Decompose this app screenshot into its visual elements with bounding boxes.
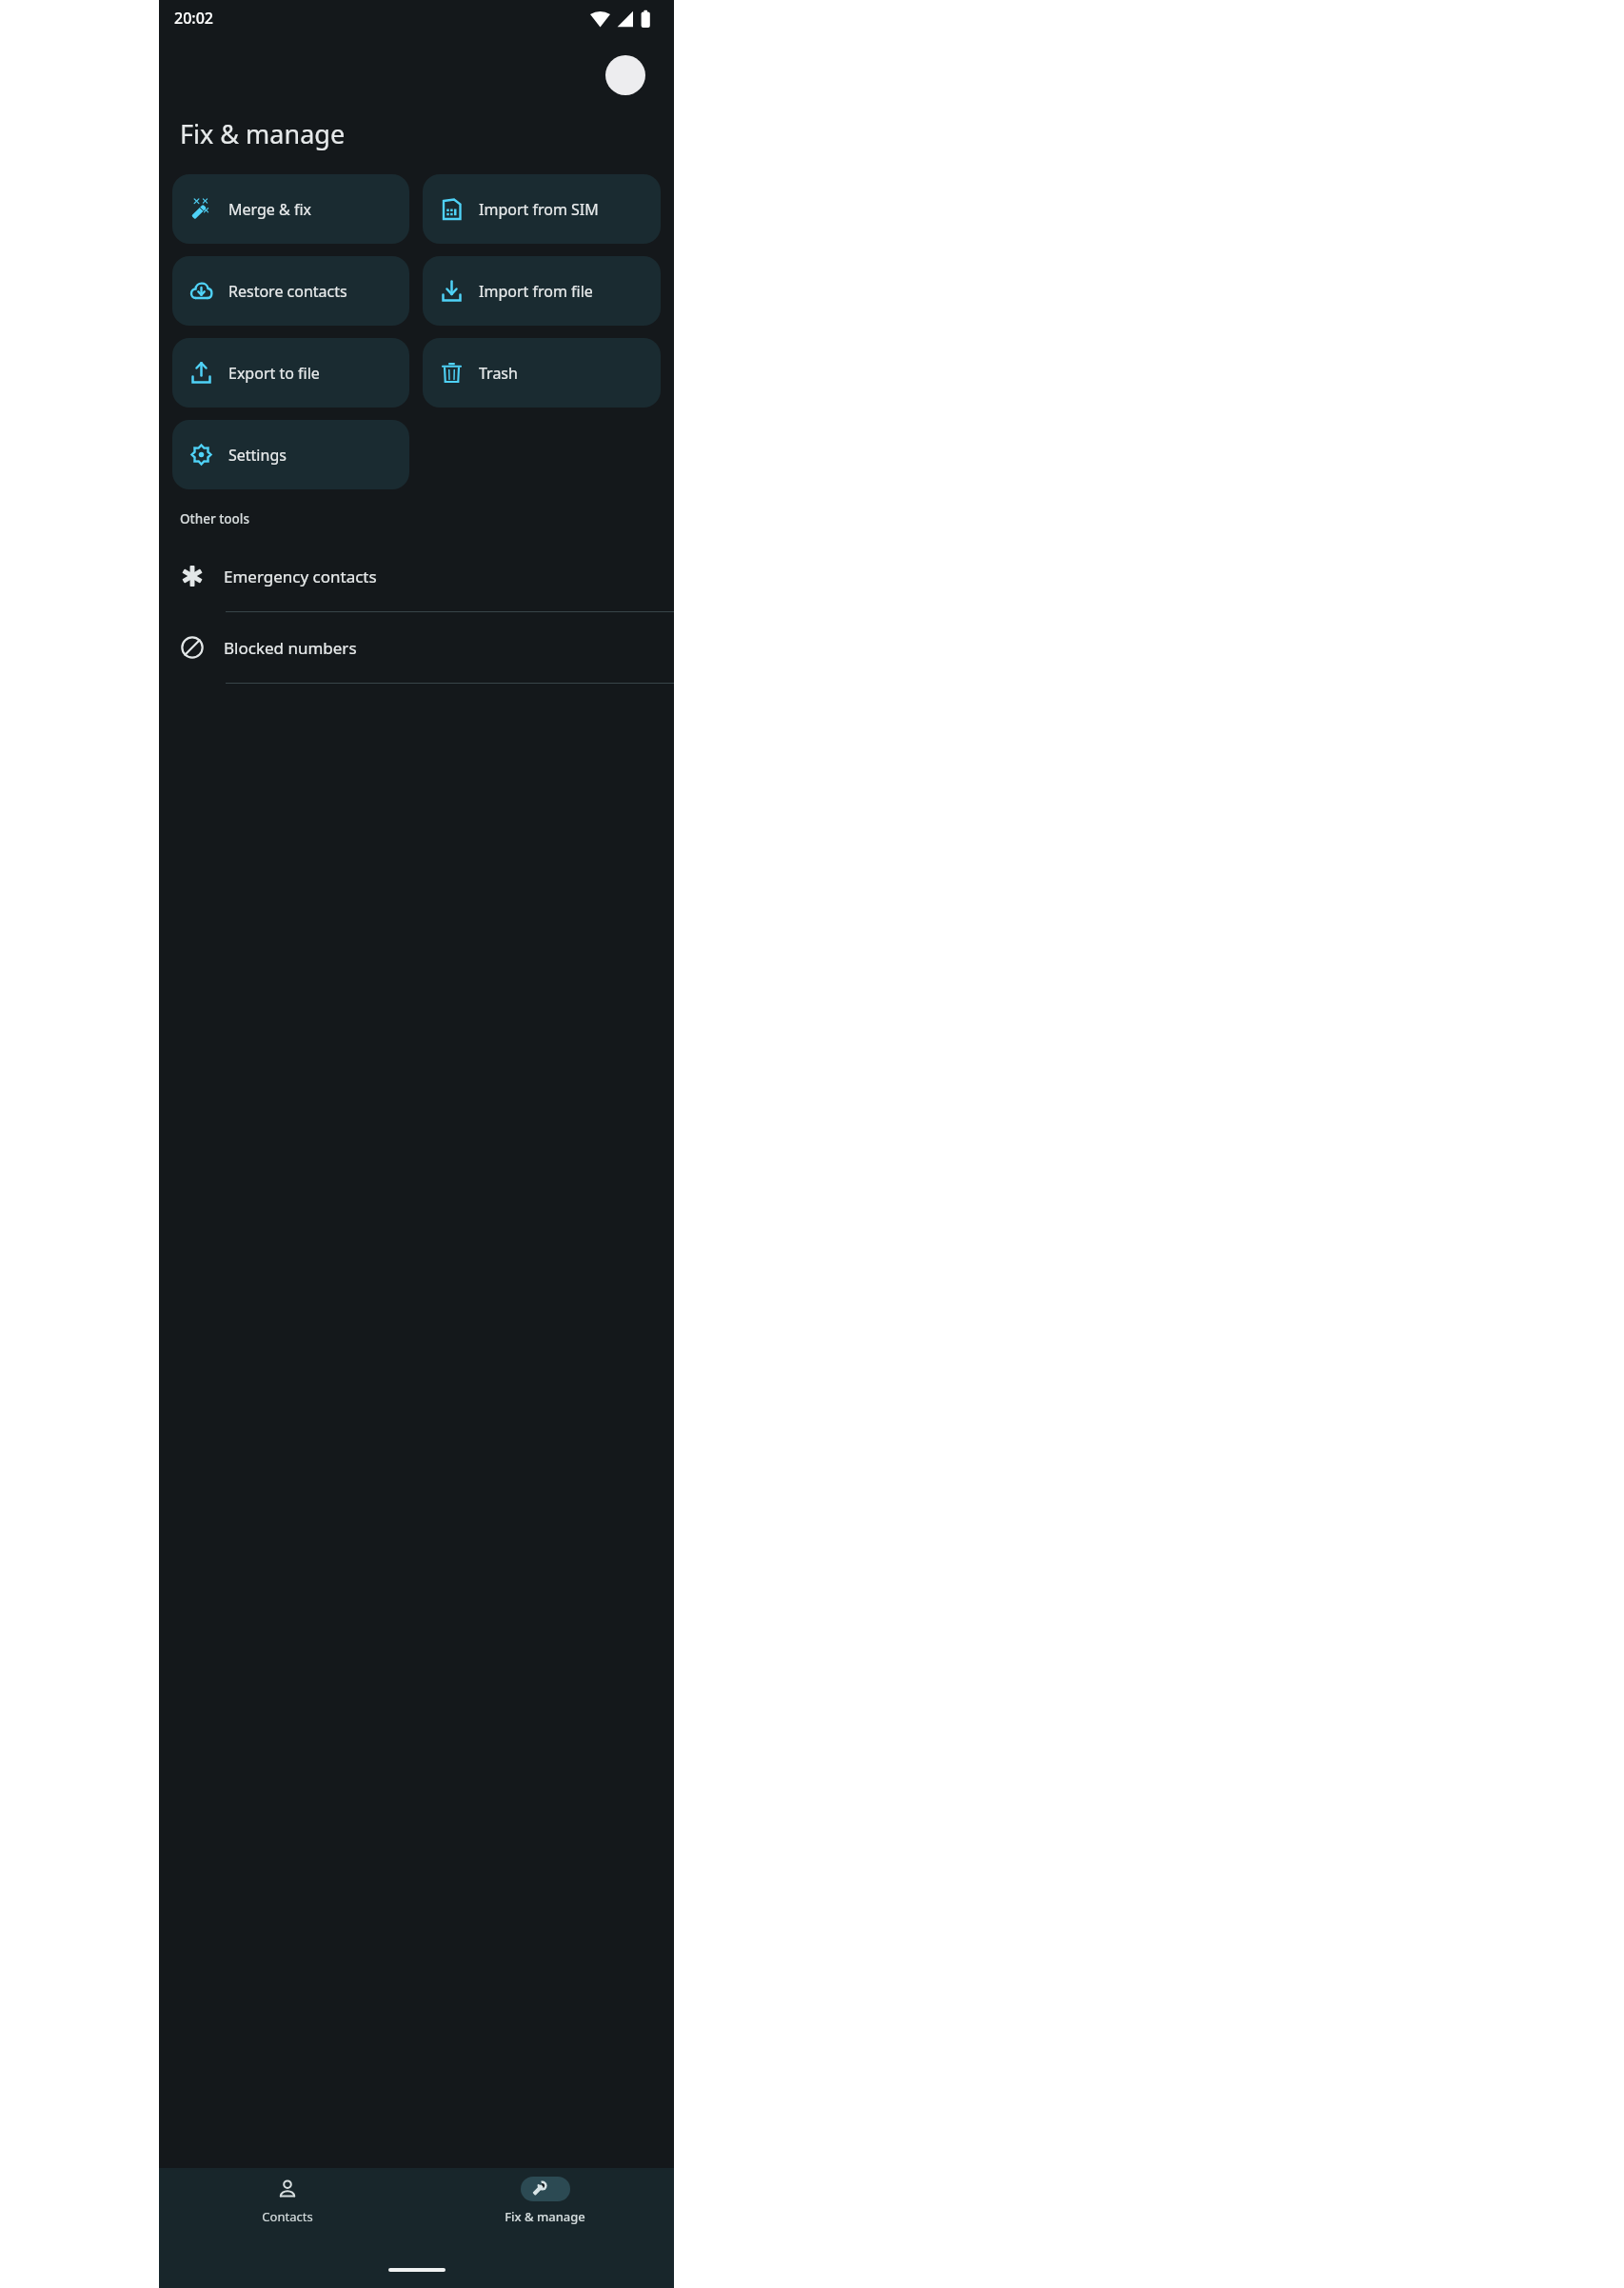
button[interactable]: Import from file [423, 256, 661, 326]
staticText: Export to file [228, 363, 320, 384]
staticText: Blocked numbers [224, 637, 357, 659]
button[interactable]: Restore contacts [172, 256, 409, 326]
staticText: Import from file [479, 281, 593, 302]
button[interactable]: Fix & manage [416, 2168, 674, 2259]
staticText: Other tools [180, 510, 250, 527]
button[interactable]: Merge & fix [172, 174, 409, 244]
staticText: 20:02 [174, 8, 213, 29]
button[interactable]: Import from SIM [423, 174, 661, 244]
staticText: Emergency contacts [224, 566, 377, 587]
staticText: Merge & fix [228, 199, 311, 220]
staticText: Settings [228, 445, 287, 466]
button[interactable]: Trash [423, 338, 661, 408]
button[interactable]: Blocked numbers [159, 612, 674, 684]
staticText: Contacts [262, 2208, 313, 2225]
staticText: Import from SIM [479, 199, 599, 220]
staticText: Fix & manage [180, 116, 346, 151]
staticText: Trash [479, 363, 518, 384]
button[interactable]: Export to file [172, 338, 409, 408]
button[interactable]: Settings [172, 420, 409, 489]
button[interactable]: Emergency contacts [159, 541, 674, 612]
staticText: Restore contacts [228, 281, 347, 302]
staticText: Fix & manage [505, 2208, 585, 2225]
button[interactable]: Contacts [159, 2168, 416, 2259]
button[interactable]: Account [605, 55, 645, 95]
